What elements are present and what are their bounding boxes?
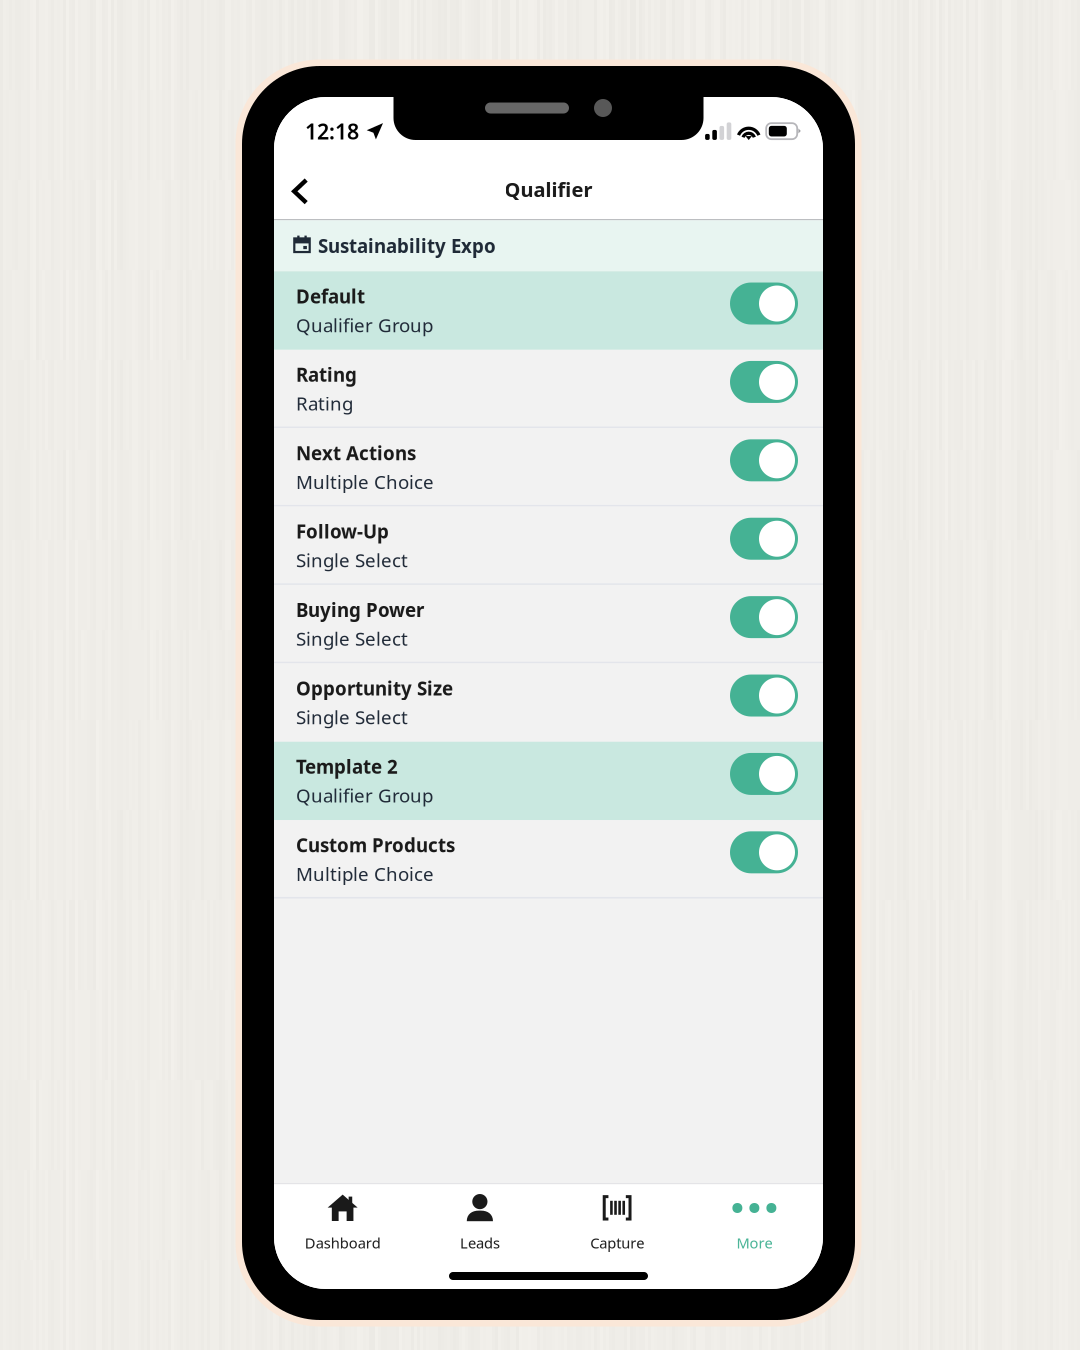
staticText: Single Select	[296, 704, 408, 729]
button[interactable]: Default	[274, 271, 823, 350]
staticText: Qualifier Group	[296, 783, 433, 808]
button[interactable]: More	[686, 1183, 823, 1258]
button[interactable]: Dashboard	[274, 1183, 411, 1258]
staticText: Rating	[296, 391, 353, 416]
staticText: Qualifier Group	[296, 312, 433, 337]
button[interactable]: Leads	[411, 1183, 548, 1258]
staticText: Follow-Up	[296, 519, 389, 544]
button[interactable]: Rating	[274, 350, 823, 428]
staticText: Opportunity Size	[296, 676, 453, 700]
button[interactable]: Next Actions	[274, 428, 823, 506]
button[interactable]: Back	[274, 158, 330, 217]
button[interactable]: Capture	[548, 1183, 686, 1258]
staticText: Default	[296, 284, 365, 308]
staticText: Custom Products	[296, 832, 455, 857]
staticText: Single Select	[296, 548, 408, 572]
staticText: Template 2	[296, 754, 398, 779]
staticText: Dashboard	[305, 1233, 381, 1252]
staticText: Leads	[460, 1233, 500, 1252]
staticText: Next Actions	[296, 440, 416, 465]
staticText: 12:18	[305, 117, 359, 145]
staticText: Multiple Choice	[296, 469, 434, 494]
button[interactable]: Template 2	[274, 742, 823, 820]
button[interactable]: Follow-Up	[274, 506, 823, 585]
staticText: Sustainability Expo	[318, 233, 496, 258]
staticText: Rating	[296, 362, 357, 387]
button[interactable]: Buying Power	[274, 585, 823, 663]
staticText: More	[736, 1233, 772, 1252]
staticText: Buying Power	[296, 597, 424, 622]
button[interactable]: Custom Products	[274, 820, 823, 898]
staticText: Single Select	[296, 626, 408, 651]
staticText: Qualifier	[504, 176, 592, 203]
staticText: Capture	[590, 1233, 644, 1252]
button[interactable]: Opportunity Size	[274, 663, 823, 742]
staticText: Multiple Choice	[296, 861, 434, 886]
